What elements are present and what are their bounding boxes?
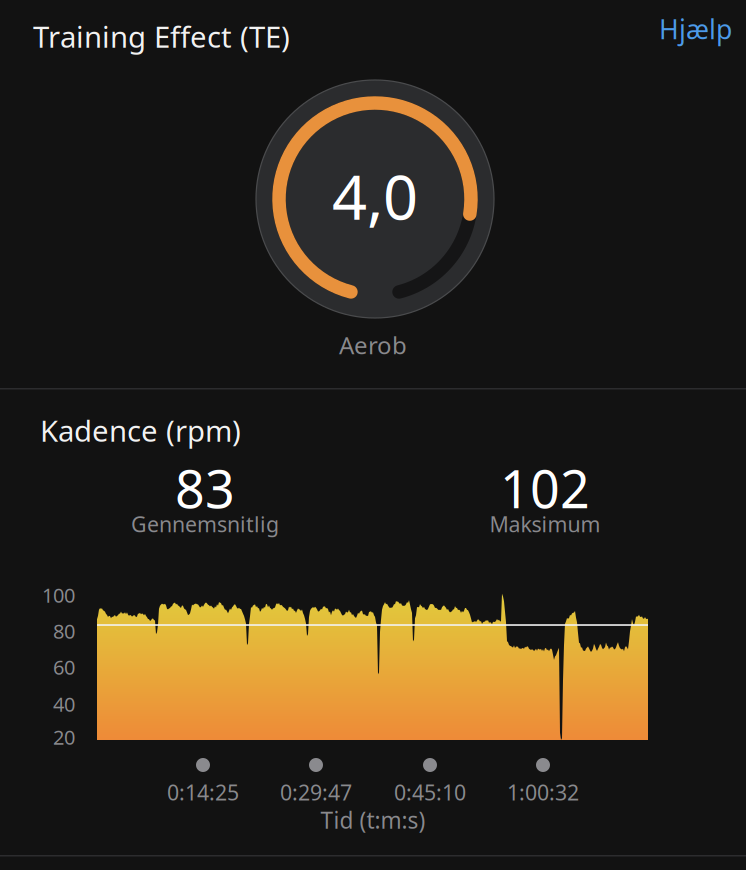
staticText: 4,0 — [332, 155, 418, 237]
staticText: Maksimum — [489, 510, 600, 538]
staticText: 0:45:10 — [394, 778, 466, 806]
staticText: 1:00:32 — [507, 778, 579, 806]
staticText: 0:29:47 — [280, 778, 352, 806]
staticText: Aerob — [339, 329, 407, 361]
staticText: 102 — [500, 453, 590, 523]
staticText: Hjælp — [659, 11, 732, 47]
staticText: 80 — [53, 618, 75, 644]
staticText: Kadence (rpm) — [40, 411, 241, 450]
staticText: Tid (t:m:s) — [320, 805, 425, 835]
button[interactable]: Hjælp — [622, 7, 732, 51]
staticText: 60 — [53, 654, 75, 680]
staticText: 83 — [175, 453, 235, 523]
staticText: 0:14:25 — [167, 778, 239, 806]
staticText: Gennemsnitlig — [131, 510, 279, 538]
staticText: Training Effect (TE) — [33, 17, 290, 56]
staticText: 40 — [53, 691, 75, 717]
staticText: 100 — [42, 582, 75, 608]
staticText: 20 — [53, 724, 75, 750]
